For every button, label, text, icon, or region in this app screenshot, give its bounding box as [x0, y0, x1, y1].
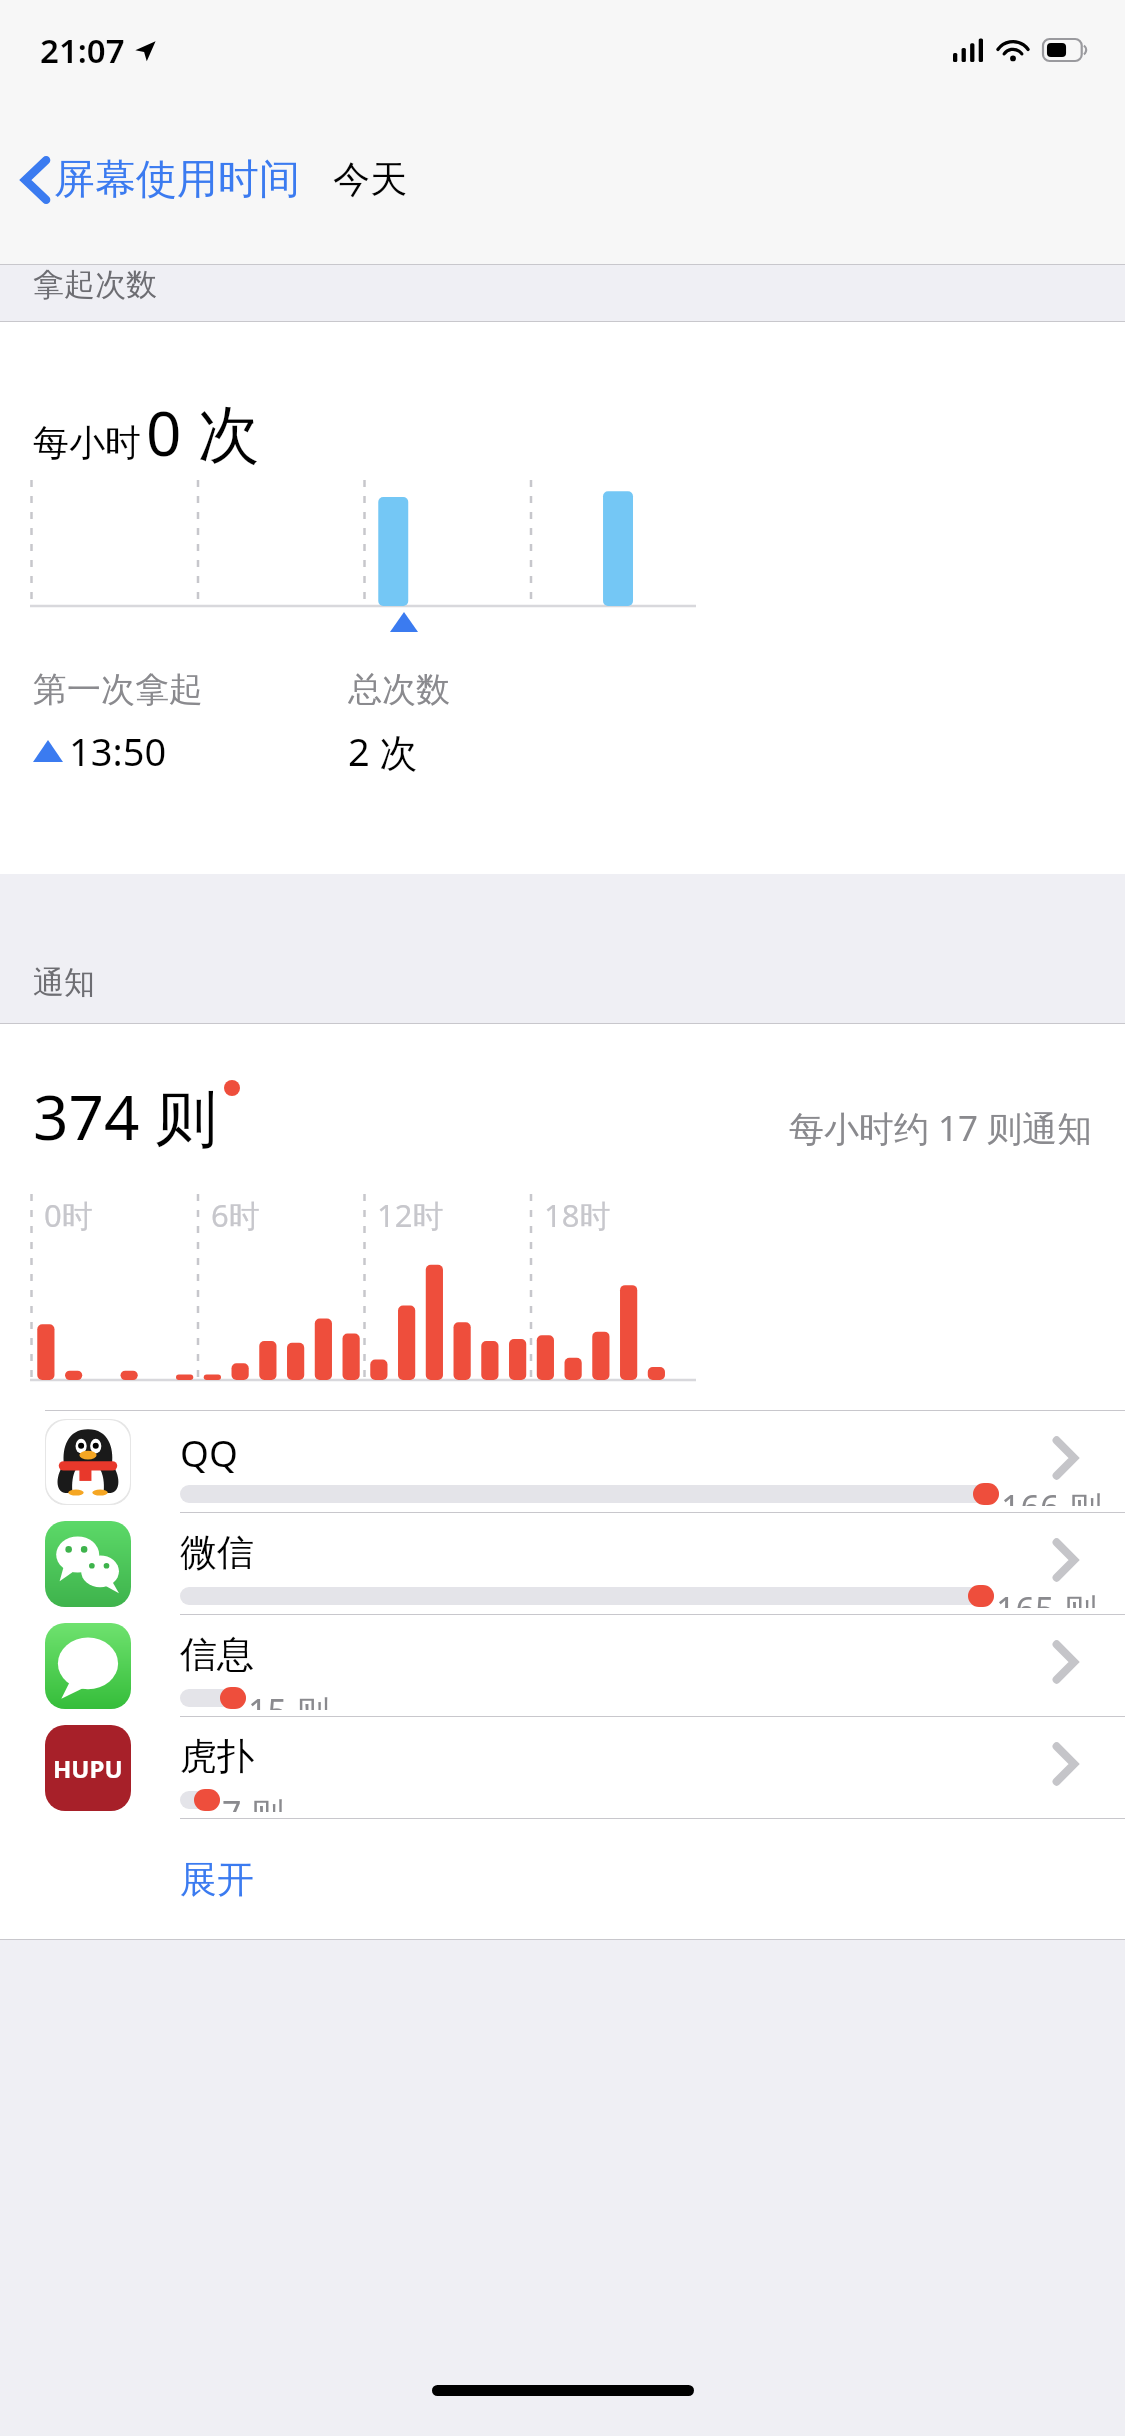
- staticText: 每小时约 17 则通知: [789, 1104, 1093, 1152]
- other: 查看微信 详情: [1053, 1539, 1077, 1581]
- button[interactable]: QQ: [0, 1411, 1125, 1512]
- staticText: 13:50: [69, 725, 167, 777]
- staticText: QQ: [180, 1427, 238, 1477]
- staticText: 12时: [377, 1194, 444, 1236]
- other: 查看QQ 详情: [1053, 1437, 1077, 1479]
- staticText: 2 次: [348, 725, 418, 777]
- button[interactable]: HUPU: [0, 1717, 1125, 1818]
- staticText: 6时: [211, 1194, 260, 1236]
- button[interactable]: 信息: [0, 1615, 1125, 1716]
- staticText: 微信: [180, 1529, 254, 1576]
- staticText: 通知: [33, 963, 95, 1002]
- staticText: 今天: [333, 156, 407, 203]
- staticText: 信息: [180, 1631, 254, 1678]
- staticText: 第一次拿起: [33, 668, 203, 711]
- staticText: 拿起次数: [33, 265, 157, 300]
- staticText: 屏幕使用时间: [54, 154, 300, 206]
- staticText: 展开: [180, 1856, 254, 1903]
- staticText: 0时: [44, 1194, 93, 1236]
- staticText: 166 则: [1001, 1484, 1103, 1506]
- staticText: 374 则: [33, 1074, 218, 1159]
- staticText: 15 则: [248, 1688, 330, 1710]
- staticText: 7 则: [222, 1790, 285, 1812]
- button[interactable]: 屏幕使用时间: [0, 150, 308, 210]
- other: 查看信息 详情: [1053, 1641, 1077, 1683]
- staticText: 总次数: [348, 668, 450, 711]
- button[interactable]: 展开: [0, 1819, 1125, 1939]
- staticText: 18时: [544, 1194, 611, 1236]
- button[interactable]: 微信: [0, 1513, 1125, 1614]
- staticText: 虎扑: [180, 1733, 254, 1780]
- staticText: 21:07: [40, 28, 125, 73]
- other: 查看虎扑 详情: [1053, 1743, 1077, 1785]
- staticText: 165 则: [996, 1586, 1098, 1608]
- staticText: 每小时: [33, 420, 141, 465]
- staticText: HUPU: [53, 1752, 123, 1785]
- staticText: 0 次: [146, 390, 260, 475]
